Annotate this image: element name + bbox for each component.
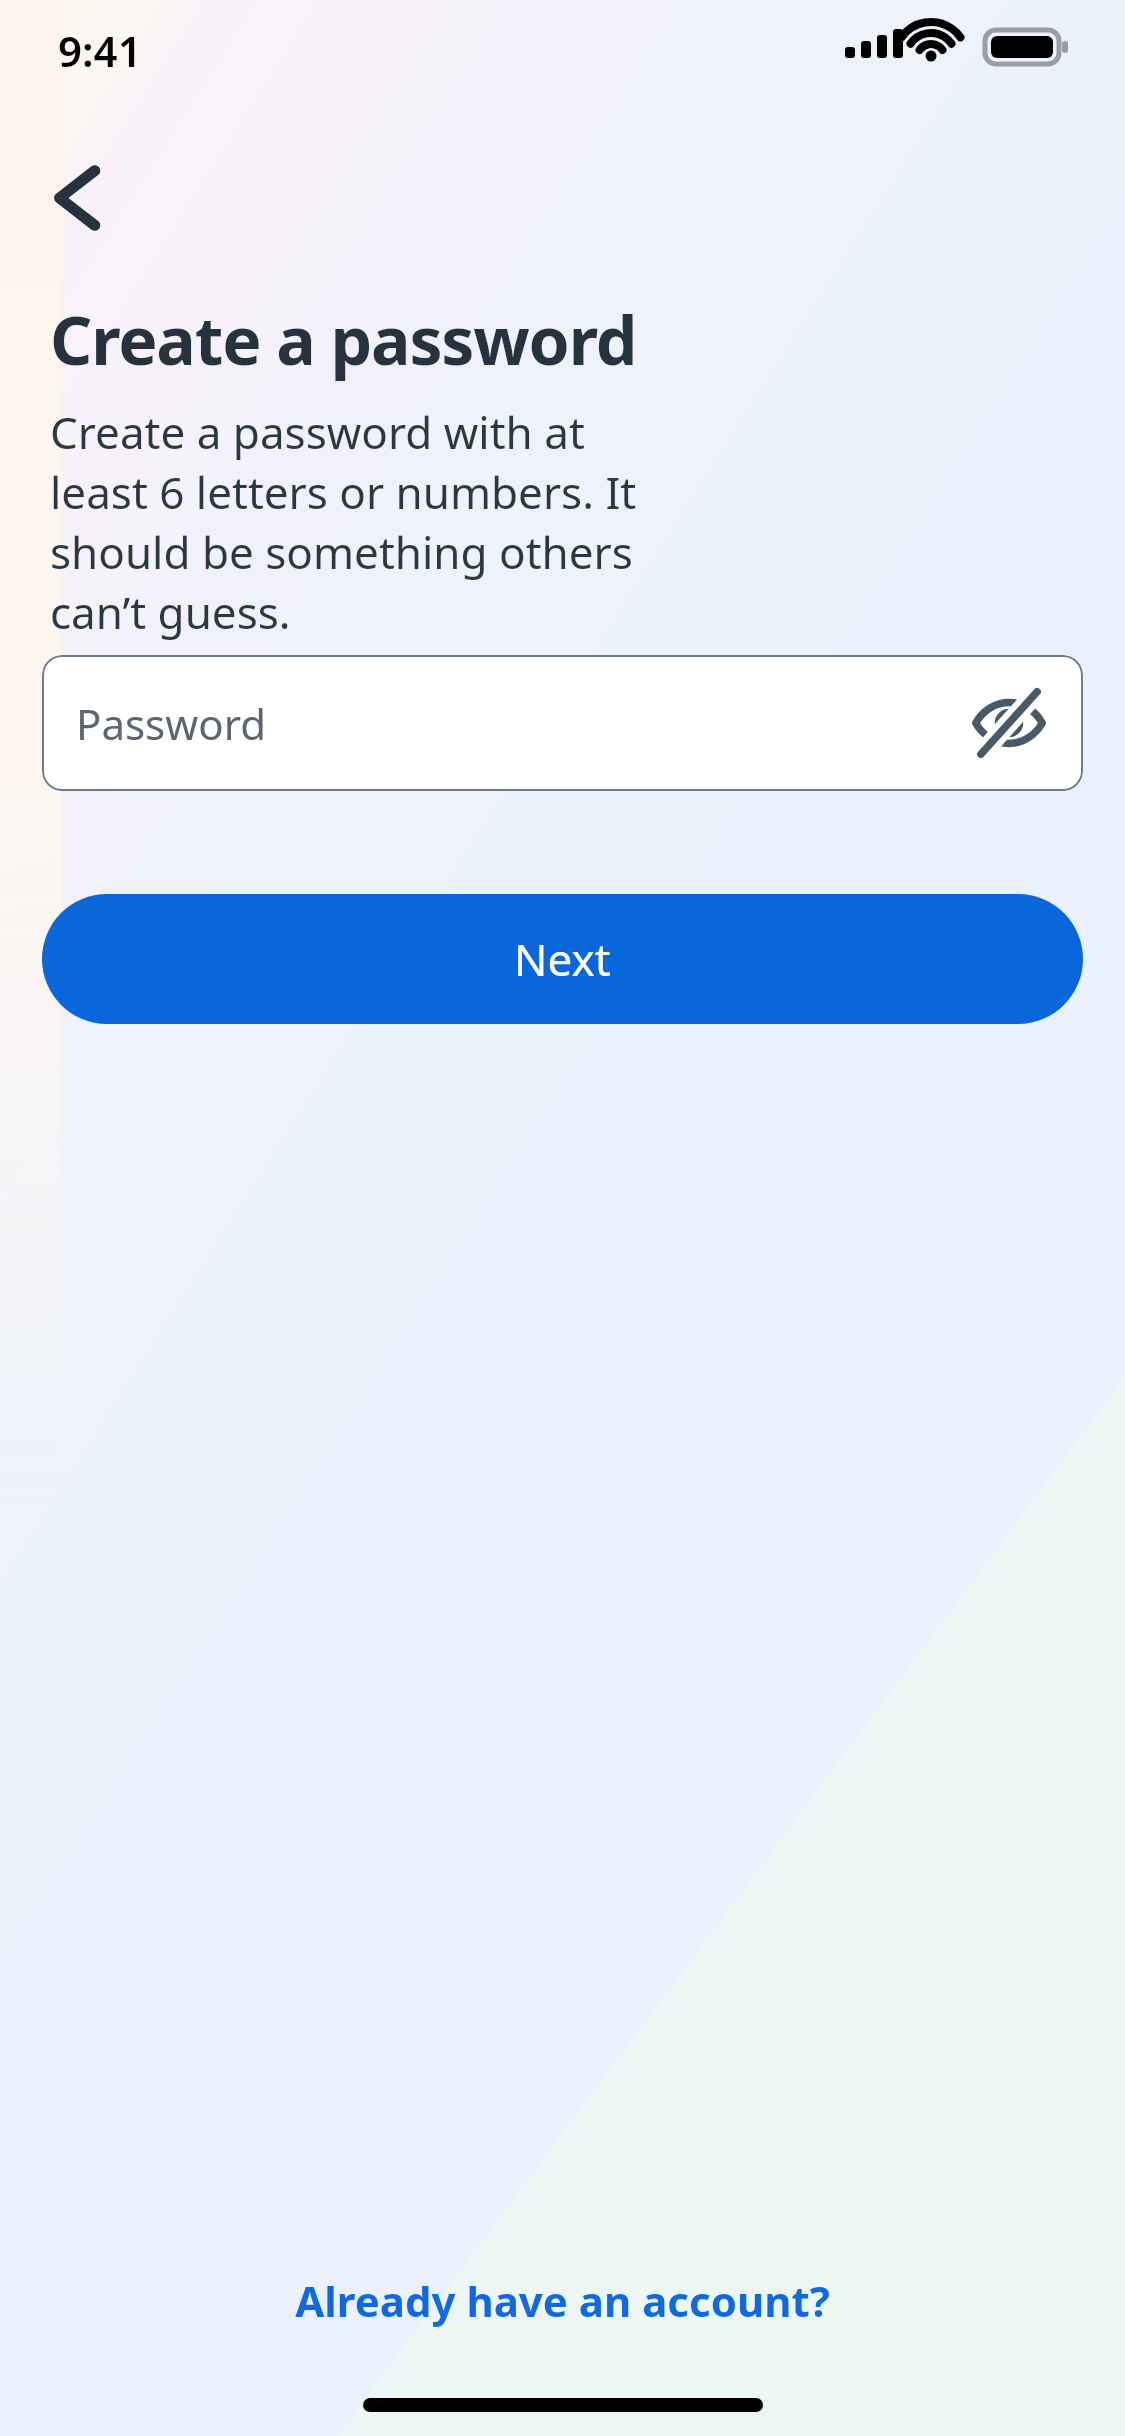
staticText: Password (76, 695, 266, 752)
staticText: 9:41 (58, 22, 142, 79)
button[interactable]: Back (30, 150, 126, 246)
staticText: Next (514, 929, 611, 989)
button[interactable]: Next (42, 894, 1083, 1024)
button[interactable]: Password (42, 655, 1083, 791)
button[interactable]: Show password (957, 671, 1061, 775)
button[interactable]: Already have an account? (0, 2252, 1125, 2348)
staticText: Create a password with at least 6 letter… (50, 402, 690, 642)
staticText: Already have an account? (295, 2272, 830, 2329)
staticText: Create a password (50, 294, 637, 384)
